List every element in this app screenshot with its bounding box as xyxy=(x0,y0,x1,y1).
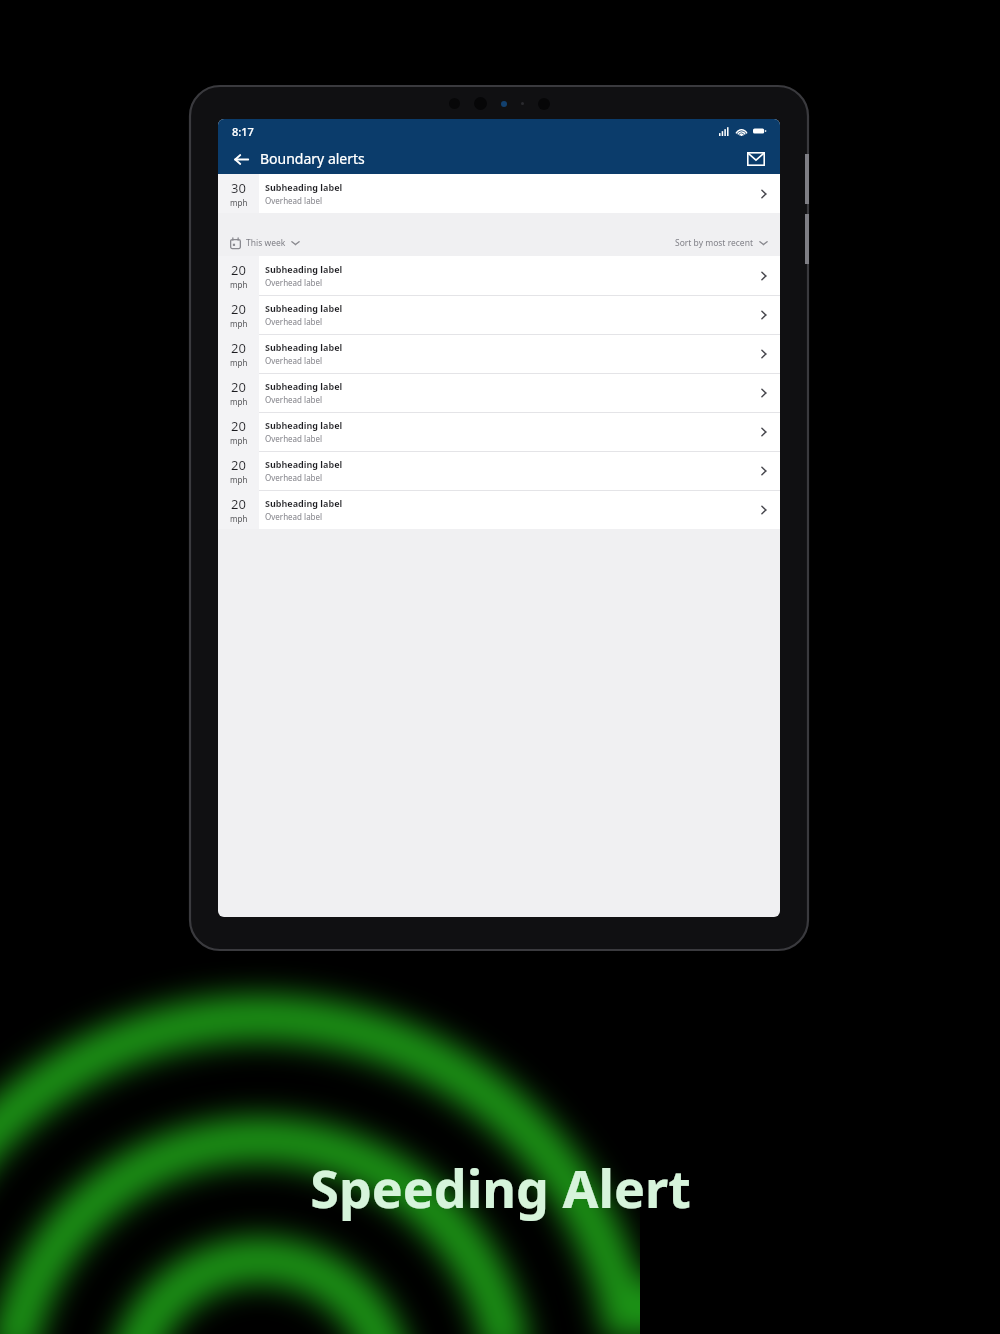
staticText: 20 xyxy=(231,300,246,318)
button[interactable]: Sort by most recent xyxy=(673,235,770,251)
button[interactable]: 30 xyxy=(218,174,780,213)
staticText: Boundary alerts xyxy=(260,149,365,168)
staticText: Overhead label xyxy=(265,195,323,206)
button[interactable]: This week xyxy=(228,235,302,251)
staticText: Overhead label xyxy=(265,472,323,483)
staticText: 20 xyxy=(231,456,246,474)
button[interactable]: 20 xyxy=(218,412,780,451)
staticText: 20 xyxy=(231,417,246,435)
staticText: Sort by most recent xyxy=(675,237,753,249)
staticText: mph xyxy=(230,396,248,407)
staticText: Overhead label xyxy=(265,511,323,522)
staticText: Subheading label xyxy=(265,341,343,353)
staticText: Overhead label xyxy=(265,355,323,366)
staticText: mph xyxy=(230,318,248,329)
staticText: mph xyxy=(230,279,248,290)
staticText: mph xyxy=(230,197,248,208)
button[interactable]: 20 xyxy=(218,295,780,334)
button[interactable]: 20 xyxy=(218,256,780,295)
staticText: Subheading label xyxy=(265,263,343,275)
staticText: 30 xyxy=(231,179,246,197)
staticText: 20 xyxy=(231,378,246,396)
button[interactable]: 20 xyxy=(218,334,780,373)
staticText: mph xyxy=(230,357,248,368)
staticText: Overhead label xyxy=(265,316,323,327)
button[interactable]: Messages xyxy=(742,145,770,173)
button[interactable]: 20 xyxy=(218,490,780,529)
staticText: Subheading label xyxy=(265,419,343,431)
staticText: Overhead label xyxy=(265,277,323,288)
staticText: mph xyxy=(230,435,248,446)
staticText: Subheading label xyxy=(265,497,343,509)
button[interactable]: 20 xyxy=(218,451,780,490)
staticText: Speeding Alert xyxy=(310,1152,691,1223)
staticText: 20 xyxy=(231,339,246,357)
button[interactable]: 20 xyxy=(218,373,780,412)
staticText: Overhead label xyxy=(265,394,323,405)
staticText: mph xyxy=(230,474,248,485)
staticText: 20 xyxy=(231,261,246,279)
staticText: Subheading label xyxy=(265,181,343,193)
staticText: Subheading label xyxy=(265,380,343,392)
staticText: 20 xyxy=(231,495,246,513)
staticText: Subheading label xyxy=(265,302,343,314)
button[interactable]: Back xyxy=(228,146,254,172)
staticText: mph xyxy=(230,513,248,524)
staticText: Overhead label xyxy=(265,433,323,444)
staticText: This week xyxy=(246,237,286,249)
staticText: 8:17 xyxy=(232,124,254,139)
staticText: Subheading label xyxy=(265,458,343,470)
